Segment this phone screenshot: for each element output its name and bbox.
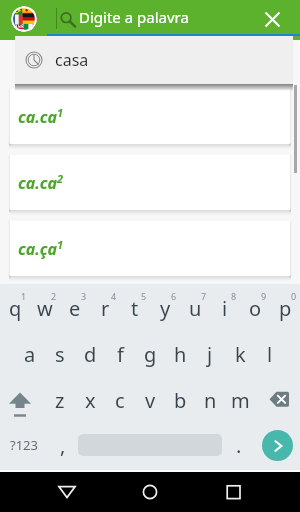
staticText: . (236, 432, 242, 459)
staticText: Digite a palavra (79, 7, 189, 27)
button[interactable]: l (255, 332, 285, 377)
staticText: 8 (231, 290, 237, 302)
staticText: k (235, 341, 246, 368)
button[interactable]: , (48, 421, 78, 469)
staticText: l (267, 341, 273, 368)
staticText: s (55, 341, 65, 368)
staticText: ?123 (10, 436, 38, 454)
button[interactable]: s (45, 332, 75, 377)
staticText: t (131, 295, 139, 322)
button[interactable]: casa (15, 36, 293, 84)
staticText: 2 (51, 290, 57, 302)
staticText: casa (55, 49, 89, 71)
button[interactable]: h (165, 332, 195, 377)
staticText: e (69, 295, 81, 322)
staticText: p (279, 295, 292, 322)
button[interactable]: Space (78, 421, 222, 469)
staticText: ca.ca2 (18, 171, 64, 194)
button[interactable]: m (225, 378, 255, 423)
button[interactable]: c (105, 378, 135, 423)
staticText: g (144, 341, 157, 368)
button[interactable]: w (30, 286, 60, 330)
staticText: n (204, 387, 217, 414)
staticText: 1 (21, 290, 27, 302)
staticText: 7 (201, 290, 207, 302)
staticText: 4 (111, 290, 117, 302)
staticText: c (115, 387, 125, 414)
button[interactable]: f (105, 332, 135, 377)
staticText: x (85, 387, 96, 414)
button[interactable]: o (240, 286, 270, 330)
button[interactable]: j (195, 332, 225, 377)
button[interactable]: x (75, 378, 105, 423)
button[interactable]: k (225, 332, 255, 377)
button[interactable]: y (150, 286, 180, 330)
button[interactable]: ca.ca1 (10, 89, 290, 144)
button[interactable]: . (224, 421, 254, 469)
button[interactable]: Enter (254, 421, 300, 469)
button[interactable]: ?123 (0, 421, 48, 469)
button[interactable]: e (60, 286, 90, 330)
staticText: 0 (291, 290, 297, 302)
button[interactable]: i (210, 286, 240, 330)
staticText: v (145, 387, 156, 414)
staticText: , (60, 432, 66, 459)
staticText: 9 (261, 290, 267, 302)
staticText: i (222, 295, 228, 322)
button[interactable]: Home (130, 472, 170, 512)
button[interactable]: ca.ça1 (10, 221, 290, 276)
button[interactable]: Recents (213, 472, 253, 512)
staticText: 5 (141, 290, 147, 302)
button[interactable]: u (180, 286, 210, 330)
staticText: o (249, 295, 262, 322)
button[interactable]: n (195, 378, 225, 423)
button[interactable]: r (90, 286, 120, 330)
staticText: ca.ca1 (18, 105, 64, 128)
button[interactable]: d (75, 332, 105, 377)
button[interactable]: z (45, 378, 75, 423)
staticText: m (231, 387, 250, 414)
staticText: y (160, 295, 171, 322)
staticText: w (37, 295, 53, 322)
staticText: a (24, 341, 36, 368)
button[interactable]: Backspace (255, 378, 300, 423)
staticText: z (55, 387, 65, 414)
staticText: j (207, 341, 213, 368)
staticText: d (84, 341, 97, 368)
button[interactable]: ca.ca2 (10, 155, 290, 210)
button[interactable]: Shift (0, 378, 45, 423)
staticText: h (174, 341, 187, 368)
staticText: f (117, 341, 124, 368)
staticText: q (9, 295, 22, 322)
button[interactable]: a (15, 332, 45, 377)
staticText: b (174, 387, 187, 414)
button[interactable]: p (270, 286, 300, 330)
button[interactable]: v (135, 378, 165, 423)
staticText: 6 (171, 290, 177, 302)
staticText: 3 (81, 290, 87, 302)
button[interactable]: g (135, 332, 165, 377)
button[interactable]: Clear (258, 5, 286, 33)
staticText: u (189, 295, 202, 322)
button[interactable]: Languages (11, 6, 37, 32)
button[interactable]: Back (47, 472, 87, 512)
staticText: ca.ça1 (18, 237, 64, 260)
button[interactable]: q (0, 286, 30, 330)
button[interactable]: t (120, 286, 150, 330)
staticText: r (101, 295, 110, 322)
button[interactable]: b (165, 378, 195, 423)
